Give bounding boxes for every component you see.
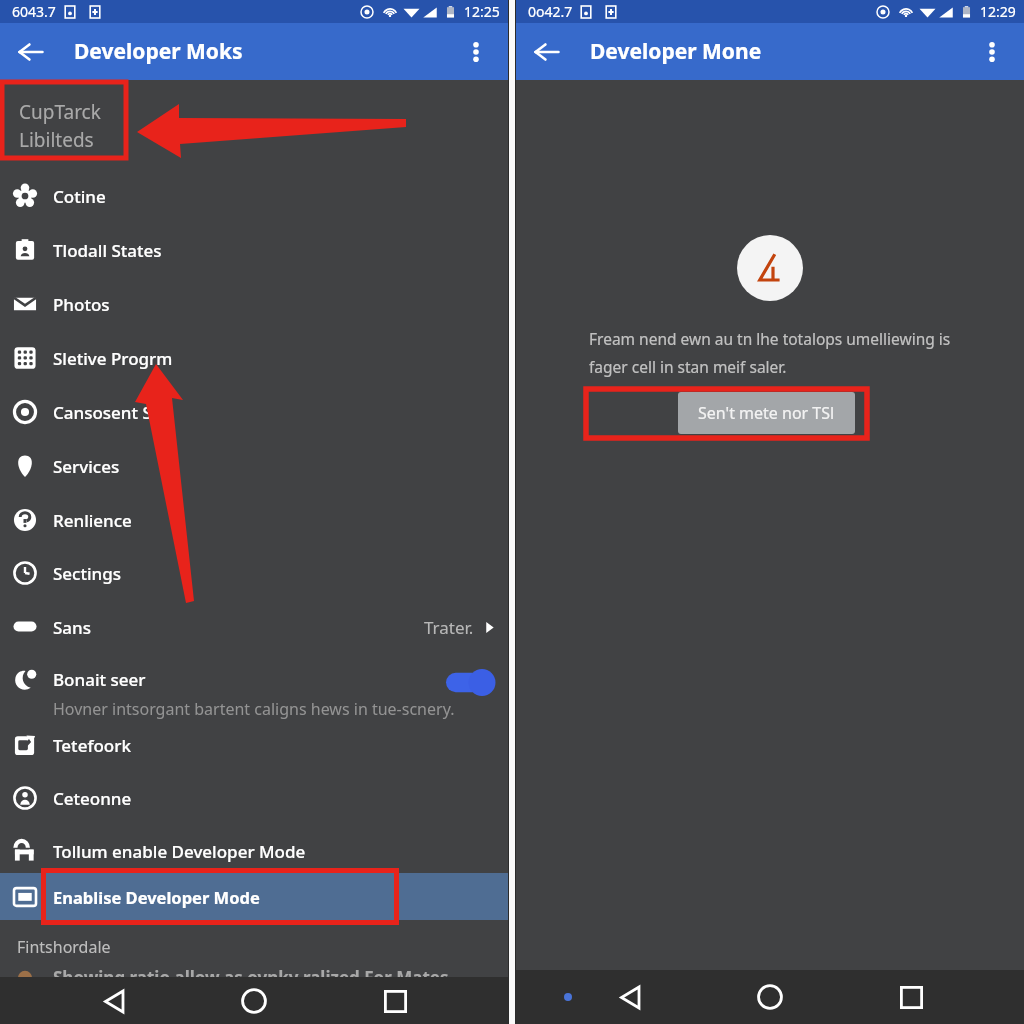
staticText: Sen't mete nor TSl	[698, 402, 835, 424]
staticText: Developer Moks	[74, 37, 243, 66]
staticText: Tlodall States	[53, 239, 162, 262]
staticText: Libilteds	[19, 127, 94, 153]
staticText: Bonait seer	[53, 668, 146, 691]
staticText: Sans	[53, 616, 91, 639]
button[interactable]: Sans	[0, 600, 508, 654]
button[interactable]: Sen't mete nor TSl	[678, 392, 855, 434]
staticText: Hovner intsorgant bartent caligns hews i…	[53, 698, 455, 720]
button[interactable]: Home	[231, 978, 277, 1024]
staticText: 6043.7	[12, 2, 56, 21]
button[interactable]: Enablise Developer Mode	[0, 873, 508, 920]
staticText: Cansosent S	[53, 401, 152, 424]
staticText: Fream nend ewn au tn lhe totalops umelli…	[589, 328, 951, 378]
staticText: 0o42.7	[528, 2, 573, 21]
button[interactable]: Recent apps	[888, 974, 934, 1020]
staticText: Fintshordale	[17, 936, 111, 958]
staticText: Showing ratio allow as ovnky ralized For…	[53, 966, 449, 989]
staticText: Developer Mone	[590, 37, 762, 66]
button[interactable]: Home	[747, 974, 793, 1020]
staticText: Cotine	[53, 185, 106, 208]
staticText: 12:29	[980, 2, 1016, 21]
staticText: Services	[53, 455, 120, 478]
staticText: Tetefoork	[53, 734, 131, 757]
button[interactable]: Recent apps	[372, 978, 418, 1024]
staticText: Trater.	[424, 616, 474, 639]
staticText: Tollum enable Developer Mode	[53, 840, 306, 863]
button[interactable]: More options	[456, 32, 496, 72]
button[interactable]: Photos	[0, 277, 508, 331]
button[interactable]: Sectings	[0, 546, 508, 600]
button[interactable]: Ceteonne	[0, 771, 508, 825]
staticText: Sletive Progrm	[53, 347, 173, 370]
button[interactable]: Sletive Progrm	[0, 331, 508, 385]
staticText: Ceteonne	[53, 787, 132, 810]
staticText: CupTarck	[19, 99, 101, 125]
button[interactable]: More options	[972, 32, 1012, 72]
button[interactable]: Cansosent S	[0, 385, 508, 439]
button[interactable]: Bonait seer	[0, 654, 508, 716]
button[interactable]: Tollum enable Developer Mode	[0, 824, 508, 878]
staticText: Renlience	[53, 509, 132, 532]
button[interactable]: Tlodall States	[0, 223, 508, 277]
button[interactable]: Renlience	[0, 493, 508, 547]
staticText: Photos	[53, 293, 110, 316]
button[interactable]: Navigate up	[9, 30, 53, 74]
staticText: Sectings	[53, 562, 122, 585]
button[interactable]: Tetefoork	[0, 718, 508, 772]
staticText: Enablise Developer Mode	[53, 886, 260, 908]
button[interactable]: Navigate up	[525, 30, 569, 74]
button[interactable]: Back	[92, 978, 138, 1024]
staticText: 12:25	[464, 2, 500, 21]
button[interactable]: Toggle night mode	[446, 669, 496, 696]
button[interactable]: Back	[608, 974, 654, 1020]
button[interactable]: Cotine	[0, 169, 508, 223]
button[interactable]: Services	[0, 439, 508, 493]
